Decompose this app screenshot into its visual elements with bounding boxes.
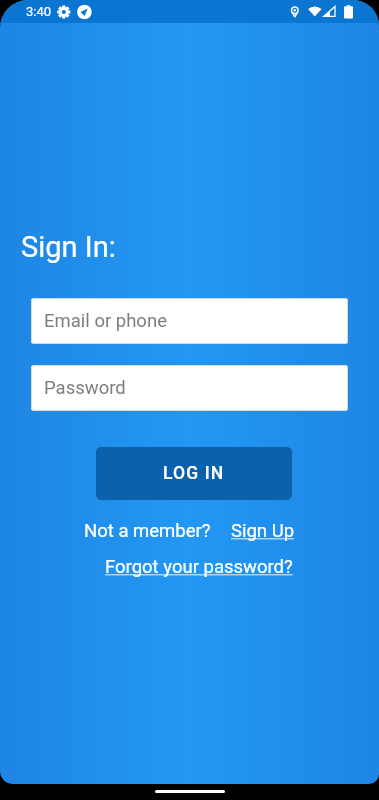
staticText: Sign In:	[21, 230, 116, 264]
button[interactable]: Sign Up	[231, 520, 295, 542]
button[interactable]: Email or phone	[31, 298, 348, 344]
staticText: Not a member?	[84, 520, 211, 542]
button[interactable]: Password	[31, 365, 348, 411]
staticText: Password	[44, 377, 126, 399]
staticText: 3:40	[26, 4, 52, 19]
staticText: LOG IN	[163, 463, 225, 484]
button[interactable]: Forgot your password?	[105, 556, 293, 578]
button[interactable]: LOG IN	[96, 447, 292, 500]
staticText: Email or phone	[44, 310, 167, 332]
